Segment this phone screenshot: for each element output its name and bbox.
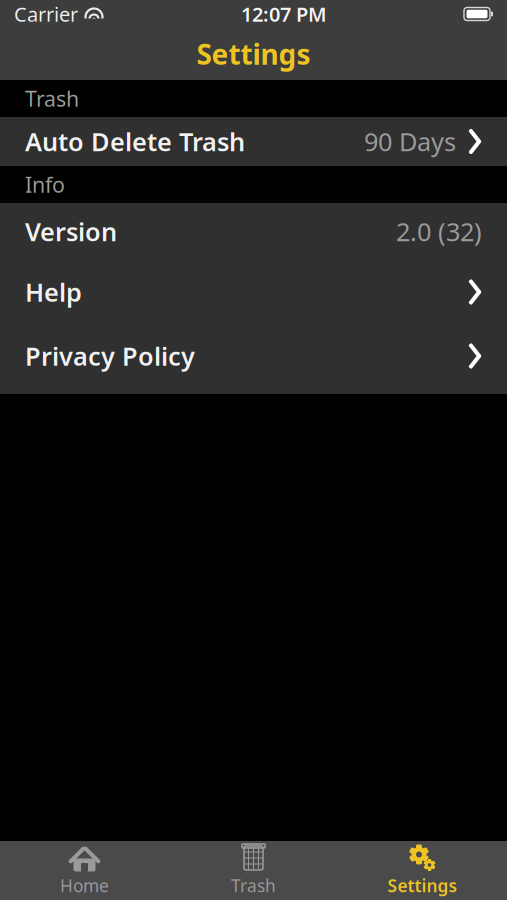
button[interactable]: Home	[0, 841, 169, 900]
button[interactable]: Trash	[169, 841, 338, 900]
button[interactable]: Privacy Policy	[0, 324, 507, 388]
button[interactable]: Settings	[338, 841, 507, 900]
staticText: 12:07 PM	[241, 1, 327, 27]
button[interactable]: Version	[0, 203, 507, 260]
staticText: Privacy Policy	[25, 339, 195, 373]
staticText: 90 Days	[364, 125, 456, 158]
staticText: Home	[60, 874, 109, 897]
staticText: Version	[25, 215, 117, 248]
staticText: Auto Delete Trash	[25, 125, 245, 158]
staticText: 2.0 (32)	[396, 215, 482, 248]
staticText: Help	[25, 275, 82, 309]
staticText: Carrier	[14, 1, 78, 27]
button[interactable]: Auto Delete Trash	[0, 117, 507, 166]
staticText: Trash	[25, 84, 79, 113]
staticText: Settings	[196, 35, 310, 73]
staticText: Info	[25, 170, 65, 199]
staticText: Settings	[387, 874, 457, 897]
button[interactable]: Help	[0, 260, 507, 324]
staticText: Trash	[231, 874, 276, 897]
